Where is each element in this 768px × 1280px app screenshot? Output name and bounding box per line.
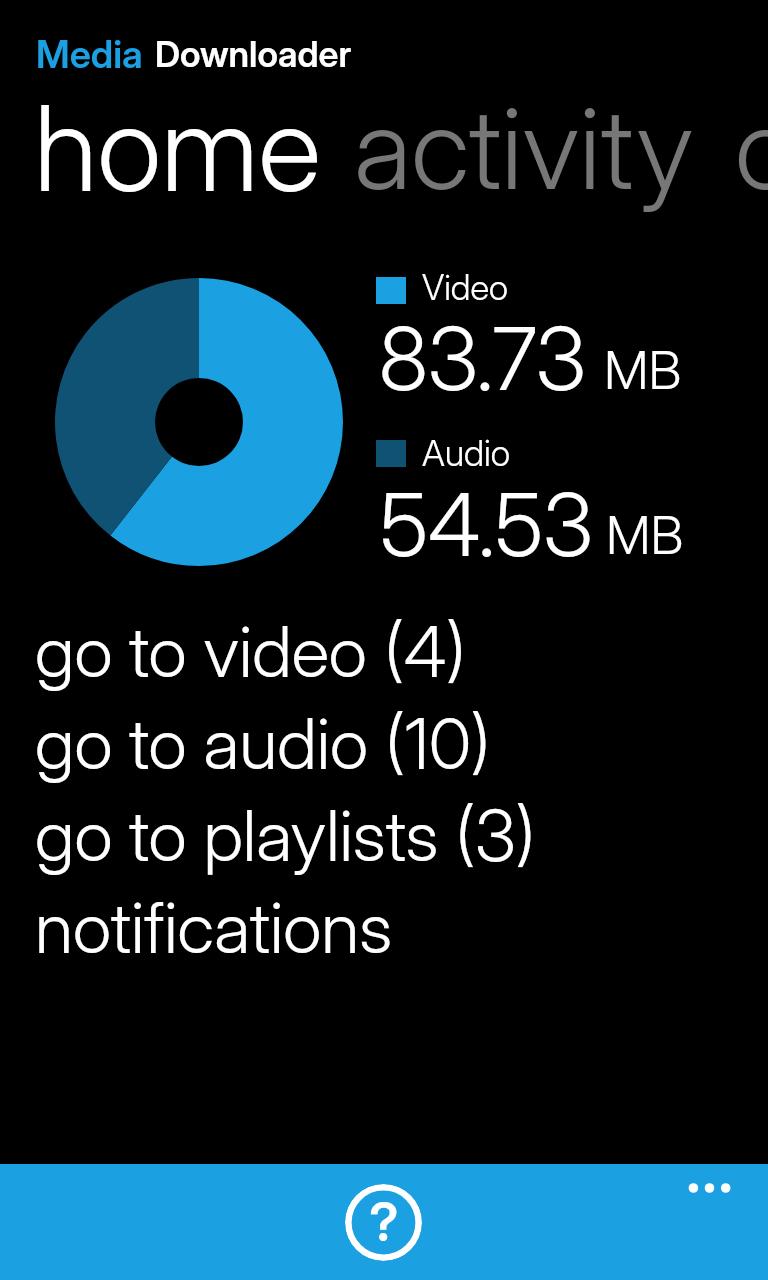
button[interactable]: More options [677, 1166, 743, 1210]
button[interactable]: activity [348, 96, 700, 241]
staticText: 83.73 [379, 306, 586, 411]
staticText: Video [422, 266, 508, 308]
button[interactable]: Help [345, 1184, 422, 1261]
staticText: go to playlists (3) [35, 793, 536, 878]
button[interactable]: home [30, 96, 326, 220]
button[interactable]: go to audio (10) [0, 677, 768, 769]
staticText: MB [606, 503, 684, 566]
staticText: go to video (4) [35, 609, 467, 694]
staticText: Media [36, 31, 143, 77]
button[interactable]: go to video (4) [0, 585, 768, 677]
staticText: go to audio (10) [35, 701, 491, 786]
staticText: notifications [35, 885, 393, 970]
button[interactable]: Media [30, 26, 360, 72]
staticText: Downloader [155, 32, 352, 75]
staticText: 54.53 [380, 472, 593, 577]
button[interactable]: other [722, 96, 768, 220]
staticText: home [34, 77, 321, 201]
button[interactable]: notifications [0, 861, 768, 953]
staticText: Audio [422, 431, 510, 474]
staticText: ? [369, 1190, 399, 1254]
staticText: other [735, 80, 768, 204]
button[interactable]: go to playlists (3) [0, 769, 768, 861]
staticText: activity [354, 80, 694, 216]
staticText: MB [604, 338, 682, 401]
